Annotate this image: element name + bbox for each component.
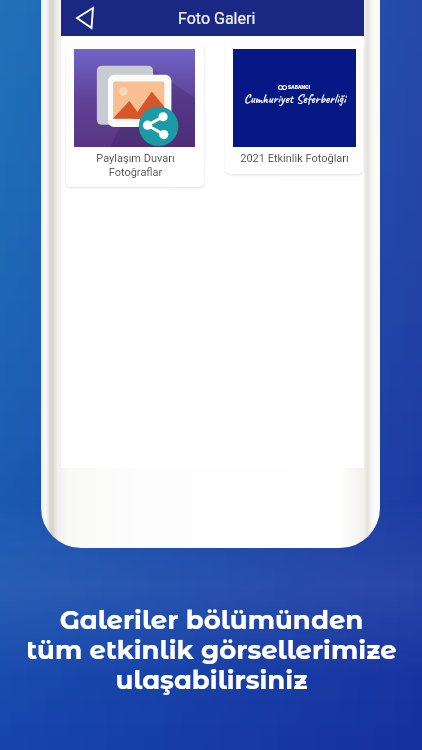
- staticText: Cumhuriyet Seferberliği: [244, 91, 346, 107]
- staticText: 2021 Etkinlik Fotoğları: [240, 152, 349, 165]
- staticText: SABANCI: [288, 84, 311, 90]
- staticText: Foto Galeri: [178, 9, 256, 28]
- staticText: Paylaşım Duvarı Fotoğraflar: [96, 152, 175, 178]
- staticText: Galeriler bölümünden tüm etkinlik görsel…: [26, 604, 397, 696]
- button[interactable]: SABANCI: [225, 42, 363, 174]
- button[interactable]: Paylaşım Duvarı Fotoğraflar: [66, 42, 204, 187]
- button[interactable]: Geri: [72, 4, 98, 32]
